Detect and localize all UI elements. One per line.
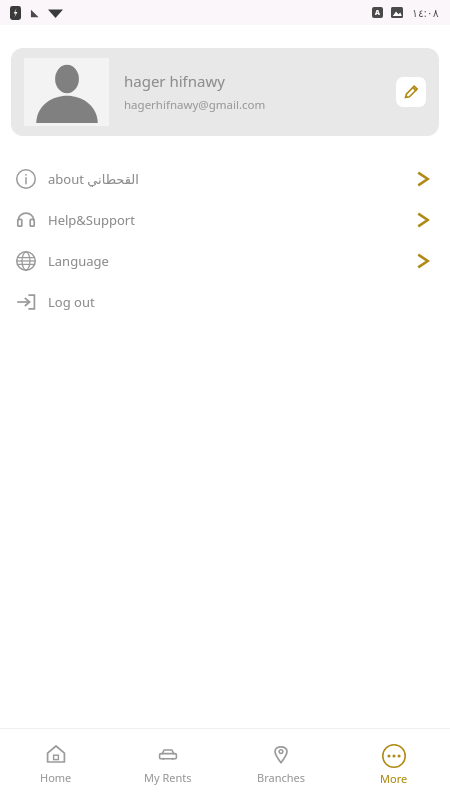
staticText: hagerhifnawy@gmail.com: [124, 97, 266, 113]
button[interactable]: Language: [0, 240, 450, 281]
staticText: More: [380, 771, 408, 786]
staticText: ١٤:٠٨: [412, 5, 439, 20]
staticText: Log out: [48, 293, 95, 311]
button[interactable]: Log out: [0, 281, 450, 322]
button[interactable]: My Rents: [112, 738, 224, 791]
button[interactable]: Branches: [224, 738, 337, 791]
staticText: Branches: [257, 770, 305, 785]
button[interactable]: More: [337, 738, 450, 792]
button[interactable]: Edit profile: [396, 77, 426, 107]
button[interactable]: Home: [0, 738, 112, 791]
staticText: hager hifnawy: [124, 71, 225, 91]
button[interactable]: Help&Support: [0, 199, 450, 240]
button[interactable]: about القحطاني: [0, 158, 450, 199]
staticText: My Rents: [144, 770, 192, 785]
staticText: Help&Support: [48, 211, 135, 229]
staticText: Language: [48, 252, 109, 270]
button[interactable]: hager hifnawy: [11, 48, 439, 136]
staticText: Home: [40, 770, 72, 785]
staticText: about القحطاني: [48, 170, 139, 188]
staticText: A: [375, 8, 380, 18]
